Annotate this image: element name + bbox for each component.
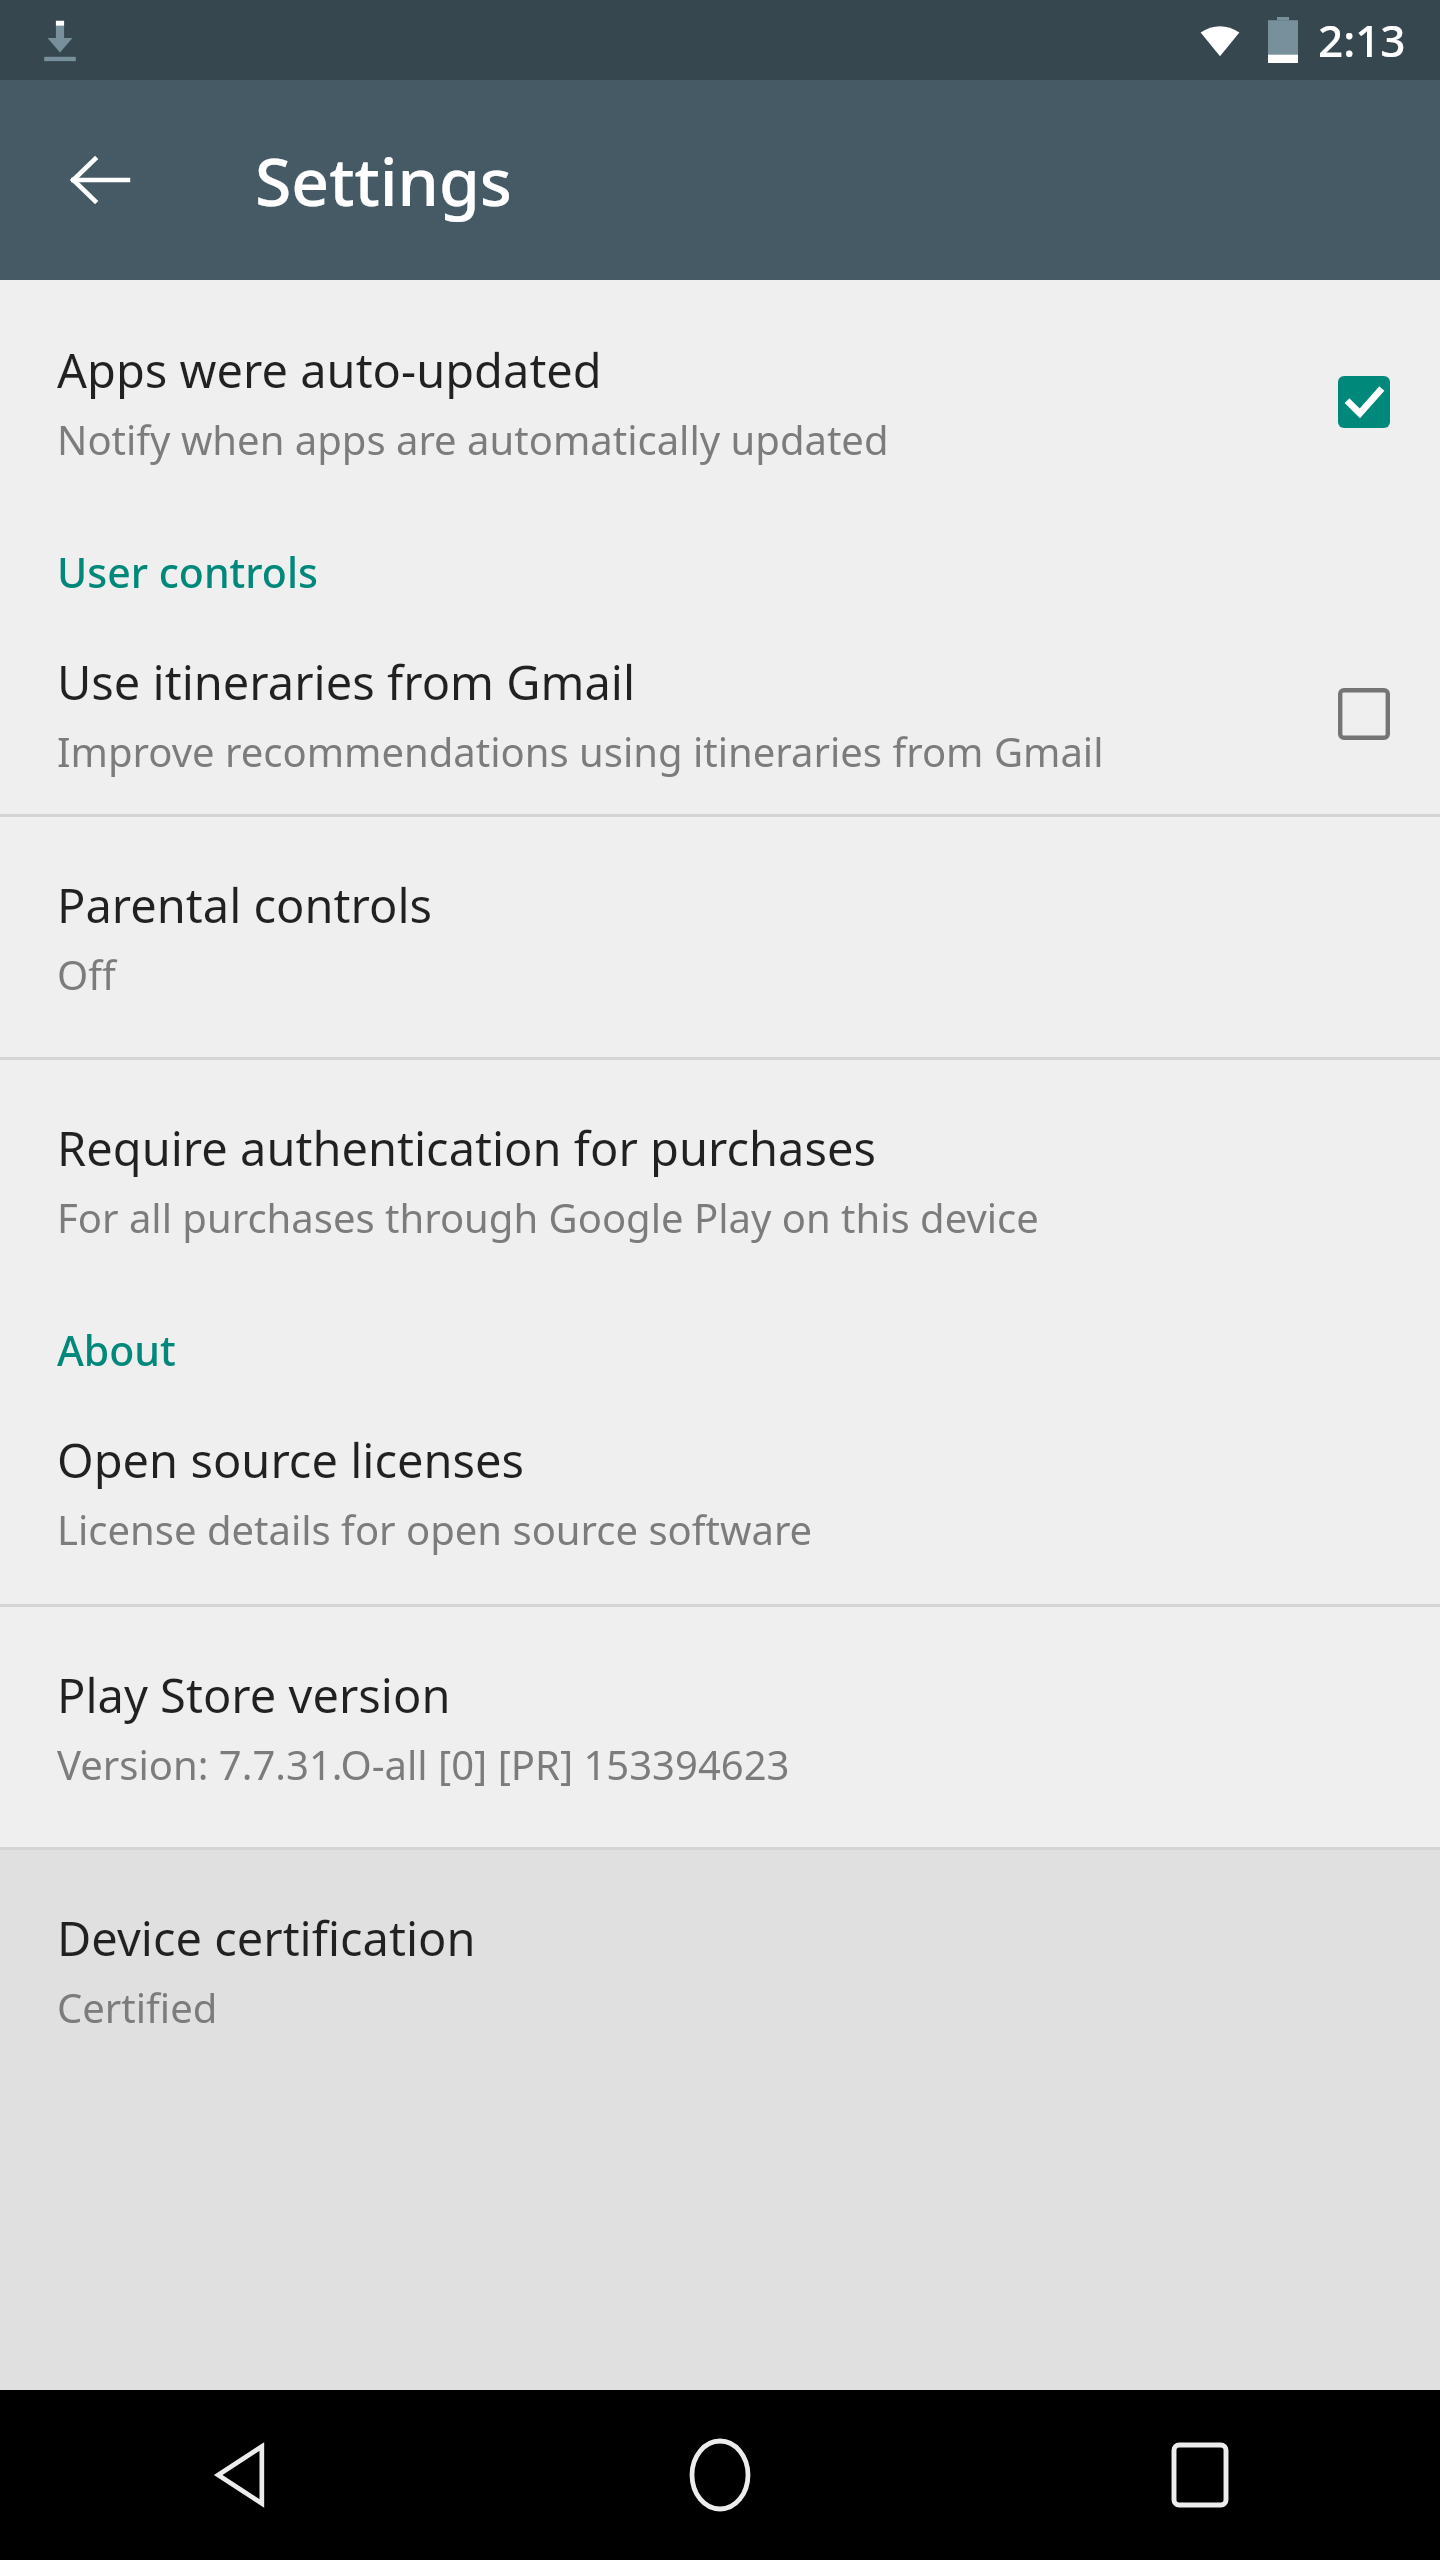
staticText: Parental controls [57, 873, 433, 937]
staticText: Settings [255, 135, 512, 225]
staticText: Open source licenses [57, 1428, 525, 1492]
staticText: Off [57, 947, 116, 1001]
staticText: Require authentication for purchases [57, 1116, 876, 1180]
button[interactable]: Back [0, 2390, 480, 2560]
staticText: Use itineraries from Gmail [57, 650, 636, 714]
staticText: Apps were auto-updated [57, 338, 602, 402]
staticText: Version: 7.7.31.O-all [0] [PR] 153394623 [57, 1737, 790, 1791]
button[interactable]: Parental controls [0, 817, 1440, 1057]
button[interactable]: Use itineraries from Gmail [0, 636, 1440, 814]
staticText: Notify when apps are automatically updat… [57, 412, 889, 466]
button[interactable]: Back [40, 120, 160, 240]
button[interactable]: Device certification [0, 1850, 1440, 2090]
staticText: License details for open source software [57, 1502, 813, 1556]
staticText: Play Store version [57, 1663, 451, 1727]
button[interactable]: Play Store version [0, 1607, 1440, 1847]
button[interactable]: Open source licenses [0, 1414, 1440, 1604]
staticText: Certified [57, 1980, 218, 2034]
button[interactable]: Require authentication for purchases [0, 1060, 1440, 1264]
staticText: For all purchases through Google Play on… [57, 1190, 1039, 1244]
staticText: User controls [57, 544, 318, 600]
staticText: 2:13 [1318, 10, 1406, 70]
button[interactable]: Home [480, 2390, 960, 2560]
button[interactable]: Recent apps [960, 2390, 1440, 2560]
staticText: About [57, 1322, 176, 1378]
staticText: Improve recommendations using itinerarie… [57, 724, 1104, 778]
staticText: Device certification [57, 1906, 476, 1970]
button[interactable]: Apps were auto-updated [0, 280, 1440, 486]
